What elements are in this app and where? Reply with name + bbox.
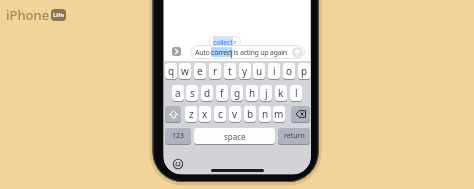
button[interactable]: d [201,85,213,101]
staticText: o [286,64,293,78]
staticText: s [190,86,195,100]
staticText: e [197,64,203,78]
button[interactable]: h [246,85,258,101]
staticText: × [233,38,237,47]
staticText: b [247,107,254,121]
staticText: a [175,86,181,100]
staticText: 123 [172,131,185,141]
button[interactable]: y [239,63,251,79]
staticText: z [189,107,194,121]
button[interactable] [173,159,183,169]
button[interactable]: k [275,85,287,101]
button[interactable]: n [259,106,271,122]
staticText: n [262,107,269,121]
button[interactable] [292,47,303,58]
staticText: u [256,64,263,78]
button[interactable]: l [290,85,302,101]
staticText: y [242,64,248,78]
button[interactable]: q [165,63,177,79]
staticText: i [273,64,276,78]
button[interactable] [291,106,310,122]
staticText: c [218,107,223,121]
button[interactable]: collect [209,36,241,47]
staticText: j [265,86,268,100]
button[interactable]: i [268,63,280,79]
staticText: m [274,107,284,121]
staticText: p [301,64,308,78]
button[interactable]: j [260,85,272,101]
button[interactable]: f [216,85,228,101]
staticText: w [181,64,189,78]
button[interactable]: return [278,128,310,144]
staticText: f [220,86,224,100]
staticText: l [295,86,298,100]
staticText: Auto correct is acting up again [195,47,287,57]
button[interactable]: x [199,106,211,122]
staticText: space [224,131,246,142]
staticText: g [234,86,241,100]
button[interactable]: p [298,63,310,79]
button[interactable]: t [224,63,236,79]
button[interactable]: 123 [165,128,191,144]
button[interactable]: e [194,63,206,79]
button[interactable]: a [172,85,184,101]
staticText: v [232,107,238,121]
button[interactable]: b [244,106,256,122]
button[interactable]: g [231,85,243,101]
button[interactable]: r [209,63,221,79]
staticText: q [168,64,175,78]
button[interactable] [165,106,181,122]
staticText: d [204,86,211,100]
staticText: return [284,131,305,141]
button[interactable]: o [283,63,295,79]
button[interactable]: v [229,106,241,122]
button[interactable]: z [185,106,197,122]
staticText: r [213,64,218,78]
button[interactable]: s [186,85,198,101]
staticText: k [278,86,284,100]
staticText: t [228,64,232,78]
staticText: h [249,86,256,100]
button[interactable]: c [214,106,226,122]
button[interactable] [172,47,181,56]
staticText: x [202,107,208,121]
button[interactable]: u [253,63,265,79]
button[interactable]: w [179,63,191,79]
staticText: collect [213,37,233,47]
button[interactable]: space [194,128,275,144]
button[interactable]: Auto correct is acting up again [190,45,305,59]
button[interactable]: m [273,106,285,122]
staticText: iPhone [6,6,50,24]
staticText: Life [53,11,65,19]
